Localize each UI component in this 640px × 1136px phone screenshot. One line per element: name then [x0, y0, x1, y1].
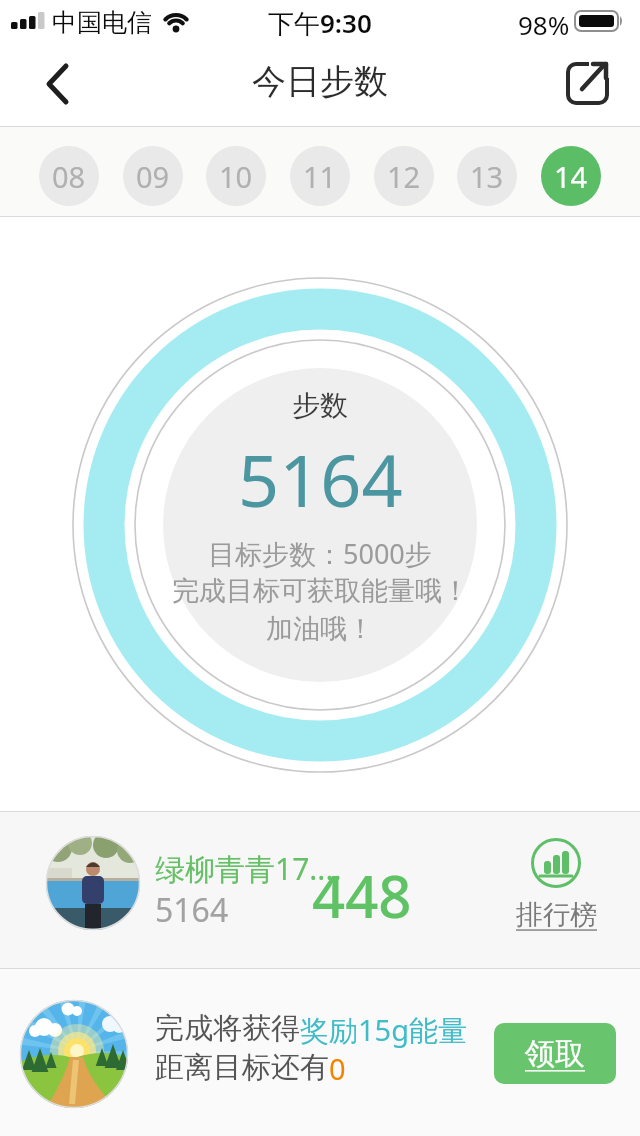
button[interactable]: 08 [39, 146, 99, 206]
button[interactable]: 13 [457, 146, 517, 206]
button[interactable]: 排行榜 [505, 838, 607, 932]
button[interactable]: 11 [290, 146, 350, 206]
staticText: 距离目标还有 [155, 1049, 329, 1086]
button[interactable]: 14 [541, 146, 601, 206]
staticText: 12 [387, 157, 421, 196]
staticText: 13 [470, 157, 504, 196]
button[interactable]: 领取 [494, 1023, 616, 1084]
staticText: 完成目标可获取能量哦！ [172, 574, 469, 608]
staticText: 领取 [525, 1035, 585, 1073]
staticText: 排行榜 [516, 898, 597, 932]
staticText: 绿柳青青17.... [155, 848, 342, 889]
staticText: 14 [554, 157, 588, 196]
staticText: 10 [219, 157, 253, 196]
button[interactable]: 12 [374, 146, 434, 206]
staticText: 448 [312, 856, 412, 935]
staticText: 中国电信 [52, 7, 152, 38]
staticText: 目标步数：5000步 [208, 535, 432, 572]
staticText: 加油哦！ [266, 612, 374, 646]
staticText: 98% [518, 7, 570, 42]
staticText: 5164 [238, 430, 403, 528]
staticText: 步数 [292, 388, 348, 423]
staticText: 09 [136, 157, 170, 196]
staticText: 08 [52, 157, 86, 196]
button[interactable]: 10 [206, 146, 266, 206]
button[interactable] [30, 54, 90, 114]
staticText: 奖励15g能量 [300, 1010, 468, 1050]
staticText: 5164 [155, 888, 229, 932]
button[interactable] [552, 58, 618, 124]
staticText: 完成将获得 [155, 1010, 300, 1047]
staticText: 0 [329, 1049, 346, 1088]
button[interactable]: 09 [123, 146, 183, 206]
staticText: 今日步数 [252, 60, 388, 103]
staticText: 下午9:30 [268, 5, 372, 41]
staticText: 11 [303, 157, 337, 196]
